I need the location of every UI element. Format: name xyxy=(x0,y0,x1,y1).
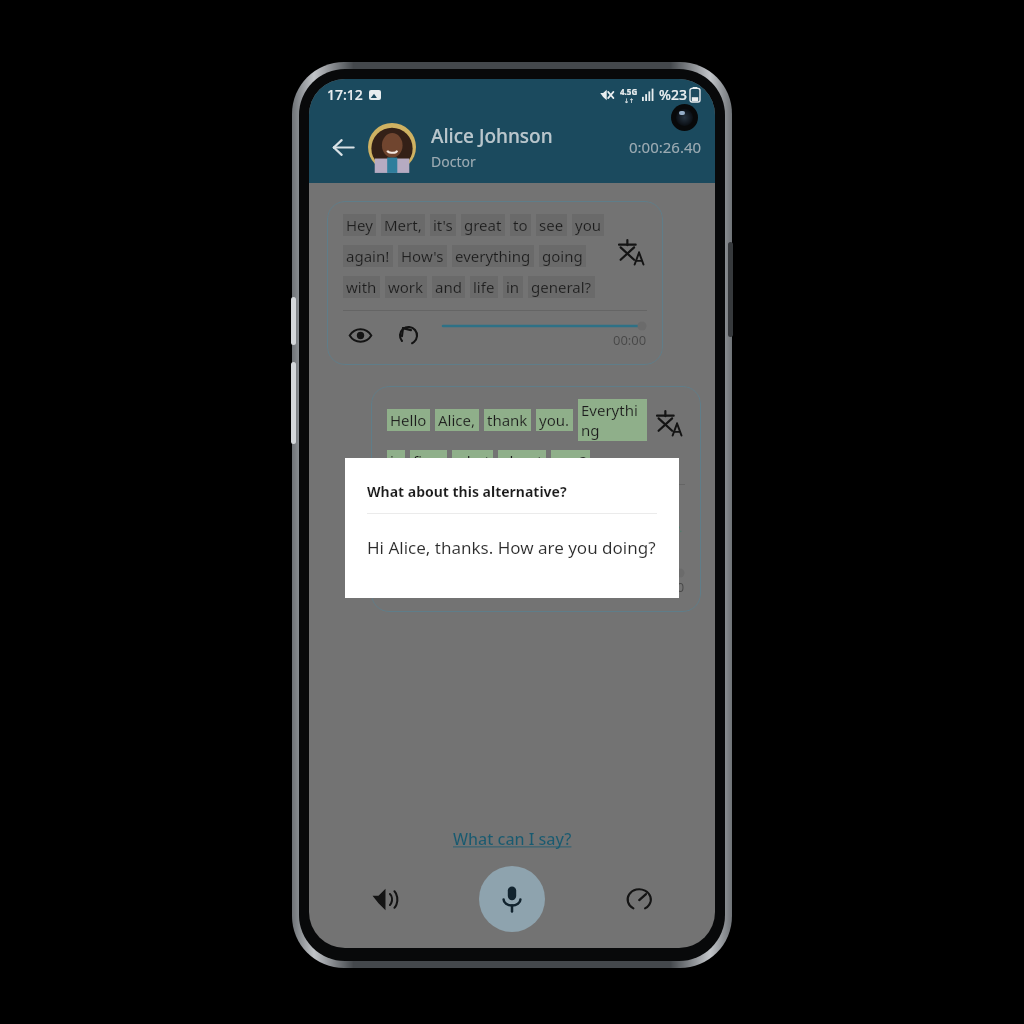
staticText: fine, xyxy=(413,451,444,471)
staticText: with xyxy=(346,277,377,297)
staticText: 00:00 xyxy=(613,331,647,349)
button[interactable]: Speaker xyxy=(359,873,411,925)
staticText: again! xyxy=(346,246,390,266)
staticText: Hi Alice, thanks. How are you doing? xyxy=(367,536,656,559)
button[interactable]: Replay xyxy=(435,565,469,599)
staticText: it's xyxy=(433,215,453,235)
staticText: you. xyxy=(539,410,570,430)
staticText: you xyxy=(575,215,601,235)
staticText: thank xyxy=(487,410,528,430)
button[interactable]: Hello xyxy=(371,386,701,612)
staticText: What about this alternative? xyxy=(367,482,567,501)
button[interactable]: Suggestion xyxy=(659,521,685,547)
button[interactable]: Translate xyxy=(615,236,647,268)
staticText: Hello xyxy=(390,410,427,430)
staticText: 0:00:26.40 xyxy=(629,137,702,157)
staticText: Mert, xyxy=(384,215,422,235)
staticText: you? xyxy=(554,451,587,471)
staticText: Doctor xyxy=(431,152,476,171)
button[interactable]: Translate xyxy=(653,407,685,439)
button[interactable]: What can I say? xyxy=(449,824,576,854)
button[interactable]: Replay xyxy=(391,318,425,352)
staticText: How's xyxy=(401,246,444,266)
staticText: What can I say? xyxy=(453,828,572,850)
button[interactable]: Show text xyxy=(387,565,421,599)
staticText: Hey xyxy=(346,215,373,235)
button[interactable]: Back xyxy=(322,126,364,168)
staticText: Alice, xyxy=(438,410,476,430)
staticText: 17:12 xyxy=(327,85,363,104)
button[interactable]: Playback speed xyxy=(613,873,665,925)
staticText: Everything xyxy=(581,400,644,440)
staticText: Alice Johnson xyxy=(431,123,553,149)
button[interactable]: Microphone xyxy=(479,866,545,932)
staticText: is xyxy=(390,451,402,471)
staticText: going xyxy=(542,246,583,266)
staticText: ↓↑ xyxy=(624,97,635,104)
staticText: see xyxy=(539,215,564,235)
staticText: great xyxy=(464,215,502,235)
button[interactable]: What about this alternative? xyxy=(345,458,679,598)
staticText: about xyxy=(501,451,543,471)
staticText: work xyxy=(388,277,424,297)
staticText: everything xyxy=(455,246,531,266)
staticText: %23 xyxy=(659,85,687,104)
button[interactable]: Hide text xyxy=(343,318,377,352)
staticText: to xyxy=(513,215,528,235)
staticText: in xyxy=(506,277,520,297)
button[interactable]: Hey xyxy=(327,201,663,365)
staticText: life xyxy=(473,277,495,297)
staticText: what xyxy=(455,451,490,471)
staticText: and xyxy=(435,277,462,297)
staticText: 00:00 xyxy=(651,578,685,596)
staticText: general? xyxy=(531,277,592,297)
staticText: 4.5G xyxy=(620,86,638,97)
